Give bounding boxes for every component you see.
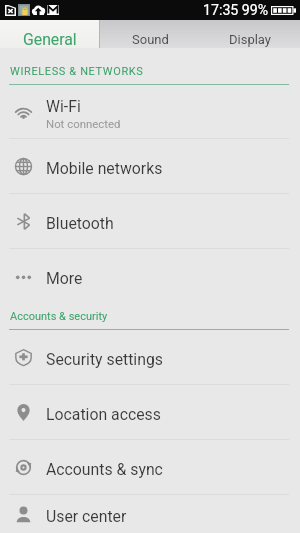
staticText: WIRELESS & NETWORKS xyxy=(10,65,144,78)
staticText: Wi-Fi xyxy=(46,97,81,116)
button[interactable]: Security settings xyxy=(0,330,300,384)
button[interactable]: Location access xyxy=(0,385,300,439)
staticText: Bluetooth xyxy=(46,214,114,233)
staticText: Security settings xyxy=(46,350,163,369)
button[interactable]: Bluetooth xyxy=(0,194,300,248)
staticText: Location access xyxy=(46,405,161,424)
staticText: User center xyxy=(46,507,127,526)
button[interactable]: Sound xyxy=(100,20,200,48)
staticText: 17:35 99% xyxy=(203,2,269,19)
staticText: Accounts & security xyxy=(10,310,108,323)
button[interactable]: More xyxy=(0,249,300,303)
button[interactable]: Display xyxy=(200,20,300,48)
button[interactable]: General xyxy=(0,20,99,48)
staticText: Display xyxy=(229,32,271,47)
staticText: Sound xyxy=(132,32,169,47)
button[interactable]: Wi-Fi xyxy=(0,85,300,138)
button[interactable]: Mobile networks xyxy=(0,139,300,193)
button[interactable]: Accounts & sync xyxy=(0,440,300,494)
staticText: Accounts & sync xyxy=(46,460,163,479)
staticText: General xyxy=(23,30,77,49)
button[interactable]: User center xyxy=(0,495,300,533)
staticText: More xyxy=(46,269,83,288)
staticText: Mobile networks xyxy=(46,159,163,178)
staticText: Not connected xyxy=(46,117,121,130)
